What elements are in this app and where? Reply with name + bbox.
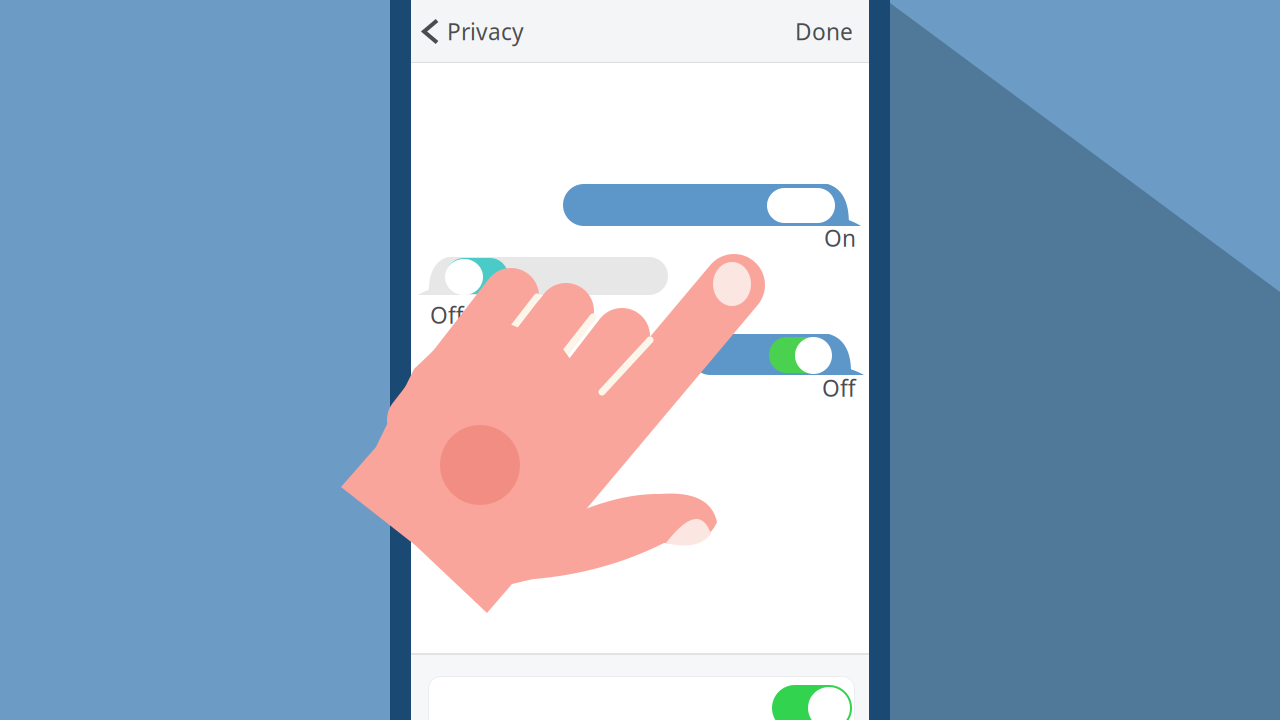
staticText: Off [430,300,464,330]
button[interactable] [428,676,855,720]
staticText: Privacy [447,16,524,46]
staticText: Done [795,16,853,46]
staticText: Off [822,373,856,403]
button[interactable]: Privacy [411,0,537,63]
button[interactable]: Done [779,0,869,63]
staticText: On [824,223,856,253]
